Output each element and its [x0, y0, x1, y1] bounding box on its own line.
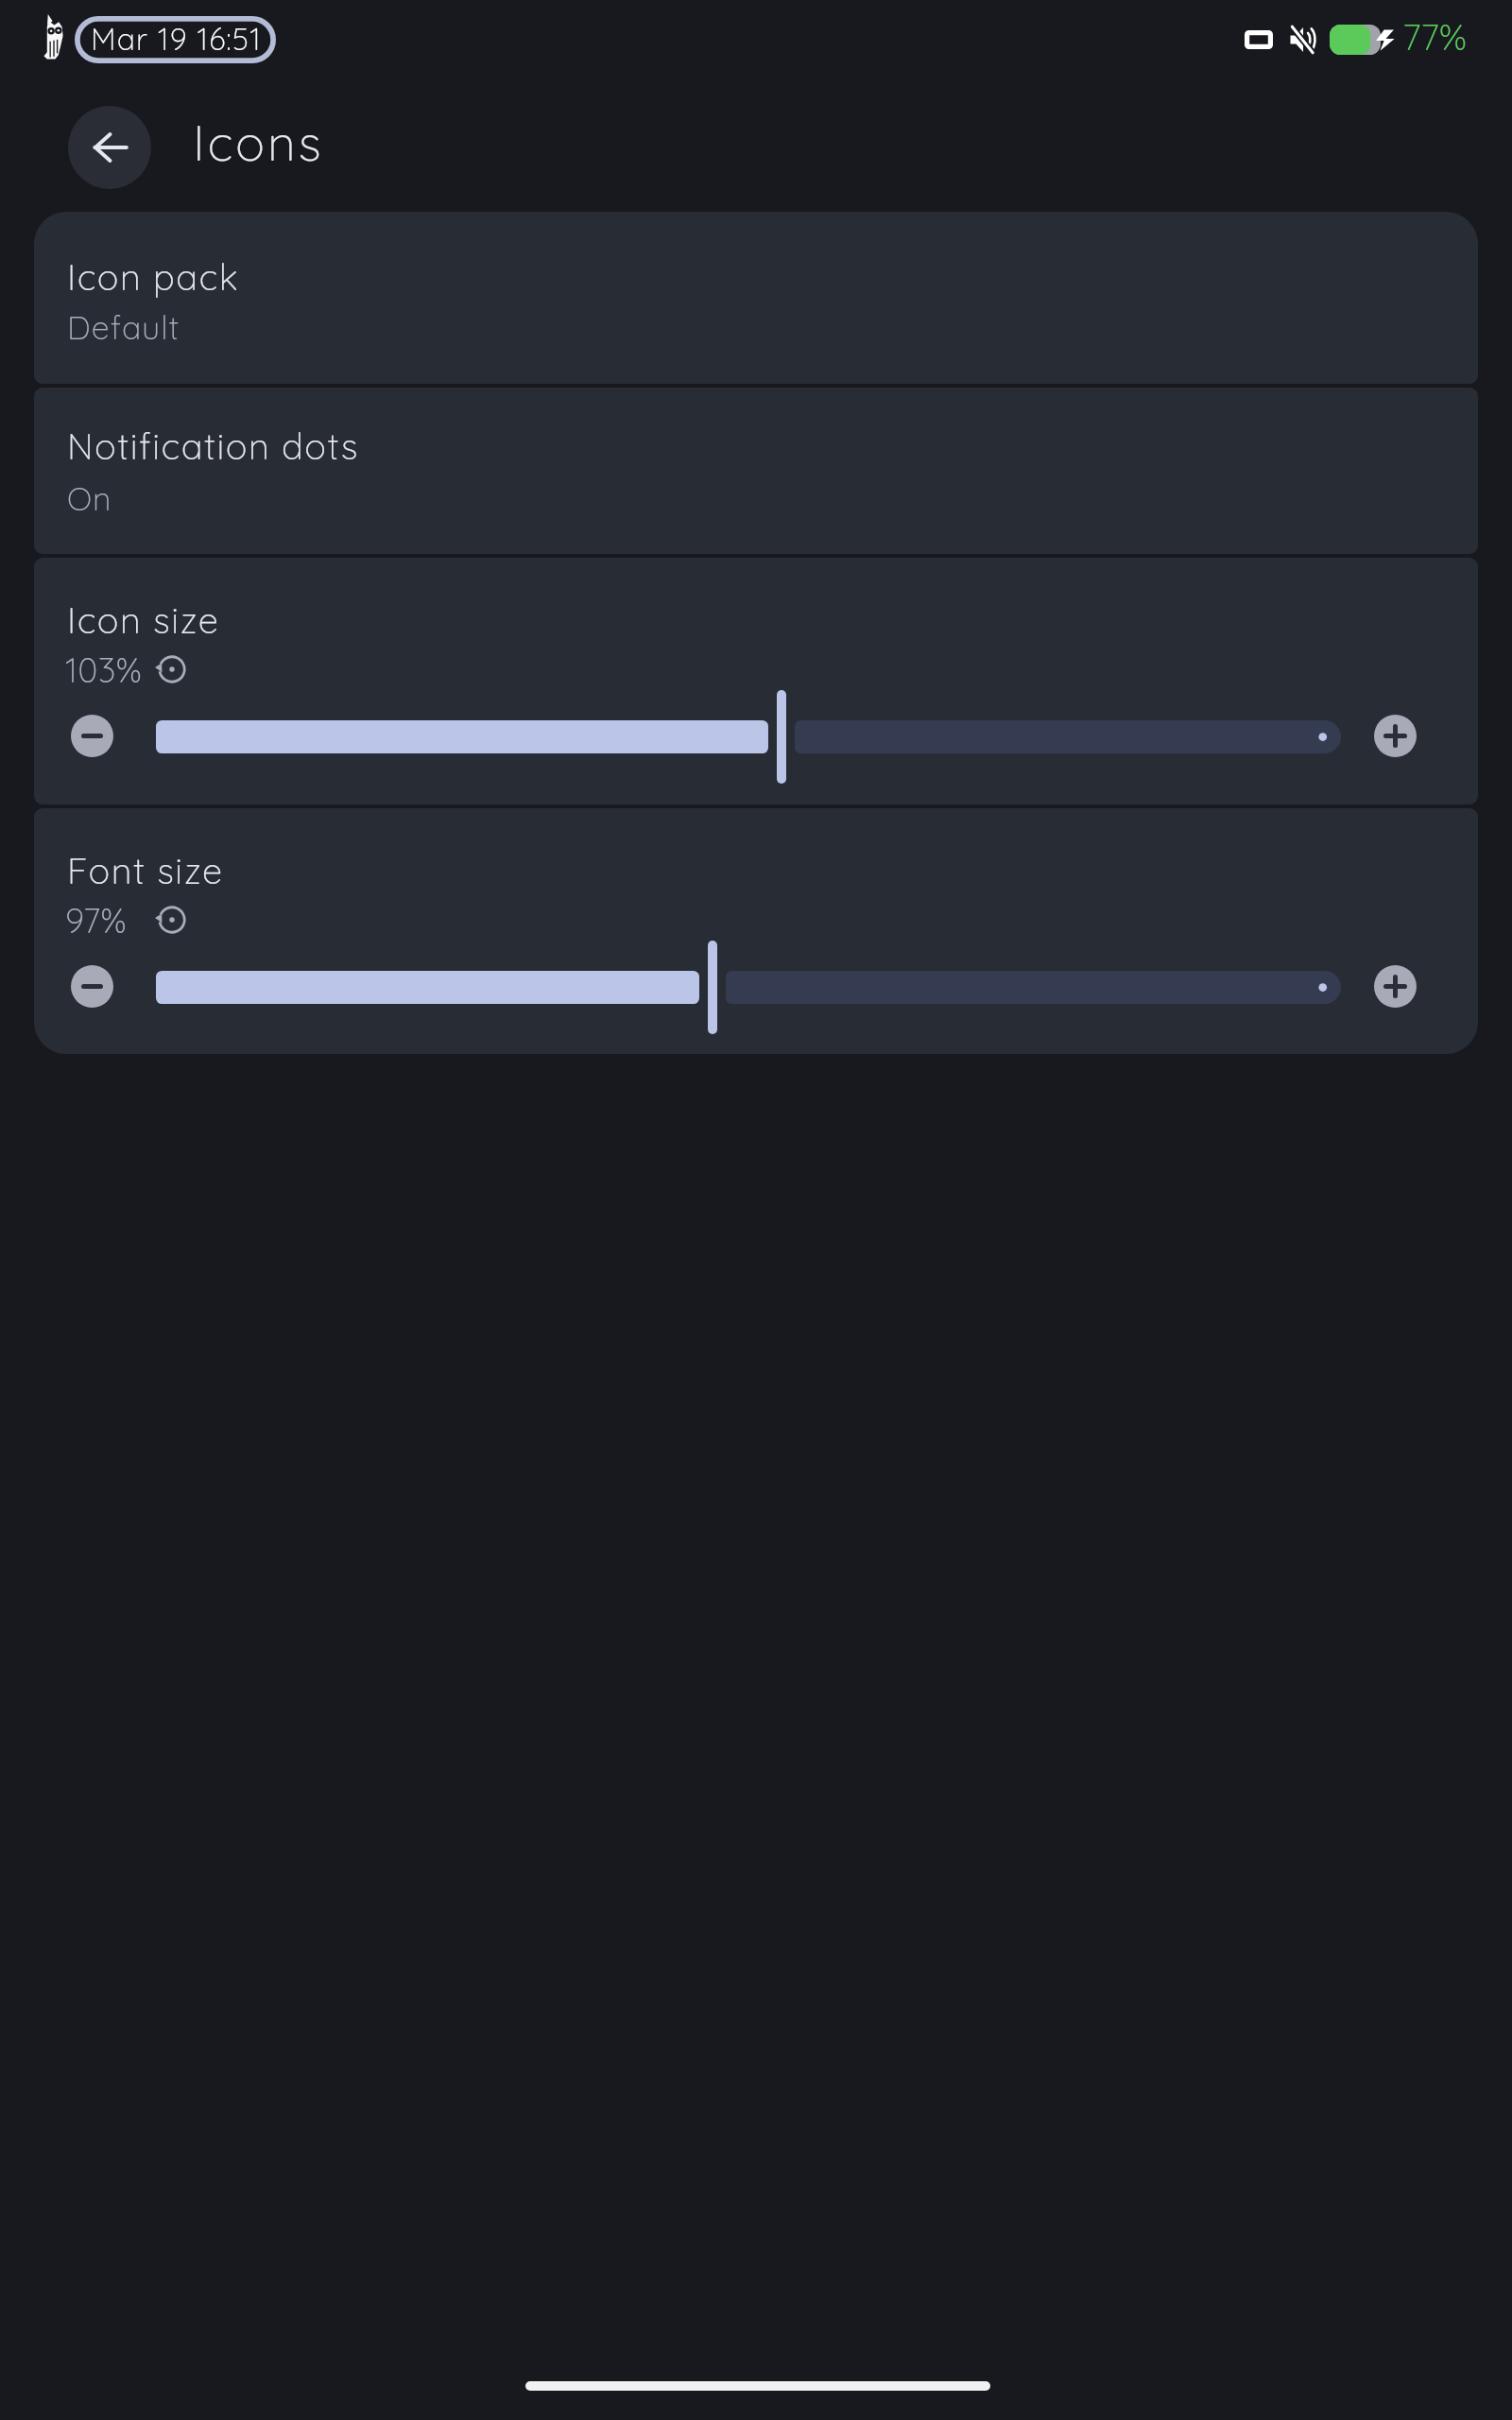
- button[interactable]: Decrease: [71, 965, 113, 1008]
- staticText: Icon size: [67, 597, 220, 643]
- button[interactable]: Increase: [1374, 715, 1417, 757]
- staticText: Font size: [67, 848, 224, 893]
- staticText: 97%: [65, 899, 128, 942]
- button[interactable]: Back: [68, 106, 151, 189]
- button[interactable]: Icon pack: [34, 212, 1478, 384]
- staticText: 103%: [65, 648, 143, 691]
- staticText: Default: [67, 307, 180, 348]
- staticText: On: [67, 478, 112, 519]
- staticText: Mar 19 16:51: [91, 20, 262, 58]
- staticText: Notification dots: [67, 423, 359, 469]
- button[interactable]: Increase: [1374, 965, 1417, 1008]
- staticText: Icons: [193, 112, 324, 173]
- button[interactable]: Icon size slider: [156, 690, 1341, 784]
- staticText: 77%: [1402, 13, 1467, 60]
- button[interactable]: Notification dots: [34, 388, 1478, 554]
- button[interactable]: Decrease: [71, 715, 113, 757]
- button[interactable]: Reset: [151, 899, 193, 941]
- staticText: Icon pack: [67, 254, 240, 300]
- button[interactable]: Font size slider: [156, 941, 1341, 1034]
- button[interactable]: Reset: [151, 648, 193, 690]
